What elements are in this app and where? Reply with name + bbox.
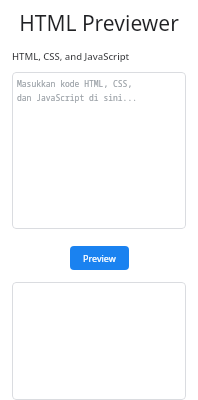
button[interactable]: Masukkan kode HTML, CSS, bbox=[12, 72, 186, 229]
staticText: Preview bbox=[83, 252, 116, 264]
button[interactable] bbox=[12, 282, 186, 400]
button[interactable]: Preview bbox=[70, 246, 129, 270]
staticText: HTML Previewer bbox=[0, 9, 198, 38]
staticText: HTML, CSS, and JavaScript bbox=[12, 50, 130, 63]
staticText: Masukkan kode HTML, CSS, bbox=[17, 78, 133, 89]
staticText: dan JavaScript di sini... bbox=[17, 92, 137, 103]
